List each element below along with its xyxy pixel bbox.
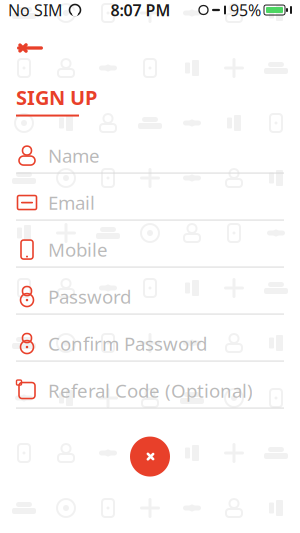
- button[interactable]: Password: [16, 280, 284, 315]
- staticText: Name: [48, 143, 100, 168]
- button[interactable]: Confirm Password: [16, 327, 284, 362]
- button[interactable]: Referal Code (Optional): [16, 374, 284, 409]
- staticText: Referal Code (Optional): [48, 378, 253, 403]
- button[interactable]: Continue: [124, 431, 176, 483]
- staticText: Mobile: [48, 237, 108, 262]
- button[interactable]: Back: [10, 32, 50, 64]
- button[interactable]: Mobile: [16, 233, 284, 268]
- staticText: Password: [48, 284, 131, 309]
- button[interactable]: Name: [16, 139, 284, 174]
- staticText: SIGN UP: [16, 84, 97, 111]
- staticText: No SIM: [8, 0, 63, 21]
- staticText: Email: [48, 190, 95, 215]
- staticText: Confirm Password: [48, 331, 207, 356]
- staticText: 95%: [230, 0, 261, 21]
- staticText: 8:07 PM: [110, 0, 170, 21]
- button[interactable]: Email: [16, 186, 284, 221]
